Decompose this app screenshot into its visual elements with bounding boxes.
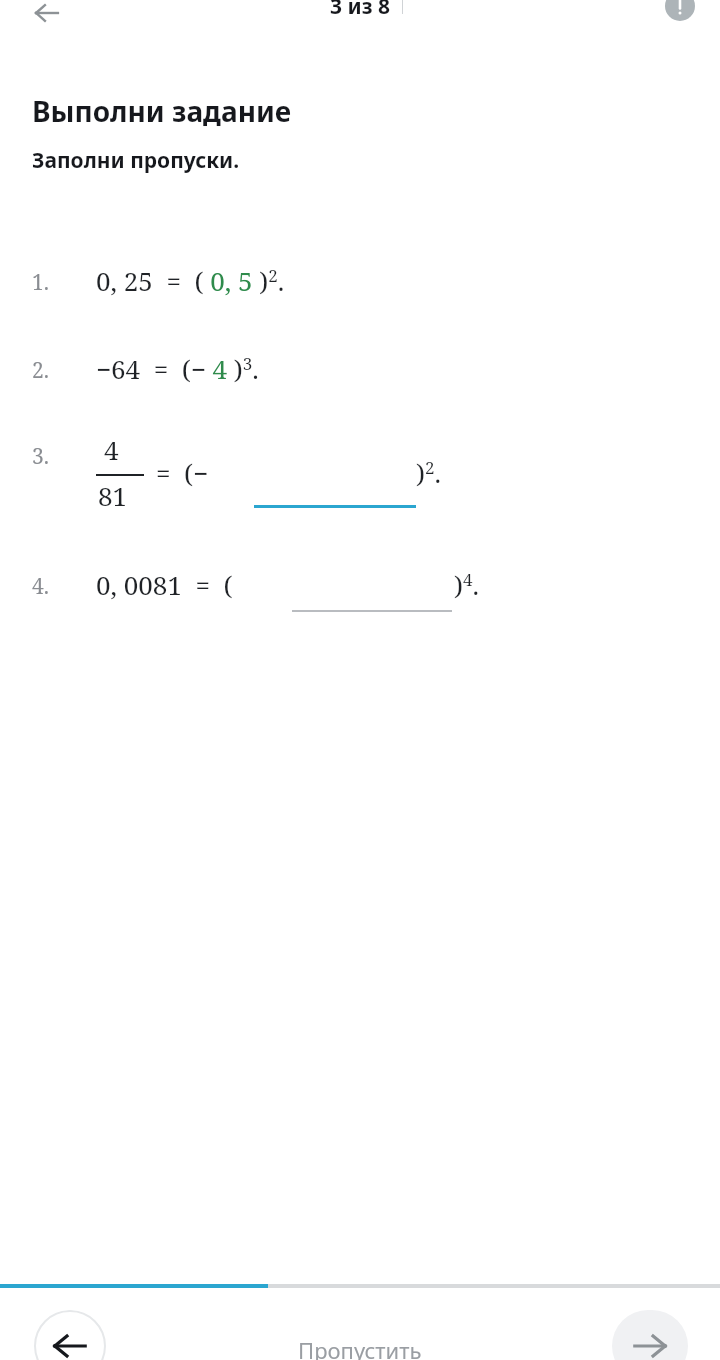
- button[interactable]: Next: [612, 1310, 688, 1360]
- staticText: 4.: [32, 572, 49, 601]
- button[interactable]: Back: [18, 0, 76, 35]
- staticText: )4.: [454, 567, 479, 602]
- button[interactable]: Previous: [32, 1310, 108, 1360]
- button[interactable]: Info: [652, 0, 708, 28]
- staticText: )2.: [416, 455, 441, 490]
- staticText: Заполни пропуски.: [32, 146, 240, 175]
- staticText: 1.: [32, 268, 49, 297]
- staticText: 0, 0081 = (: [96, 567, 233, 602]
- button[interactable]: 3 из 8: [330, 0, 390, 21]
- button[interactable]: Пропустить: [298, 1335, 422, 1360]
- staticText: −64 = (− 4 )3.: [96, 351, 259, 386]
- staticText: 4: [104, 432, 119, 467]
- staticText: = (−: [156, 455, 209, 490]
- staticText: 81: [98, 478, 128, 513]
- staticText: 0, 25 = ( 0, 5 )2.: [96, 263, 285, 298]
- staticText: 2.: [32, 356, 49, 385]
- staticText: 3 из 8: [330, 0, 390, 21]
- button[interactable]: Answer field 4: [292, 570, 452, 612]
- staticText: Выполни задание: [32, 92, 292, 130]
- button[interactable]: Answer field 3: [254, 460, 416, 508]
- staticText: Пропустить: [298, 1335, 422, 1360]
- staticText: 3.: [32, 442, 49, 471]
